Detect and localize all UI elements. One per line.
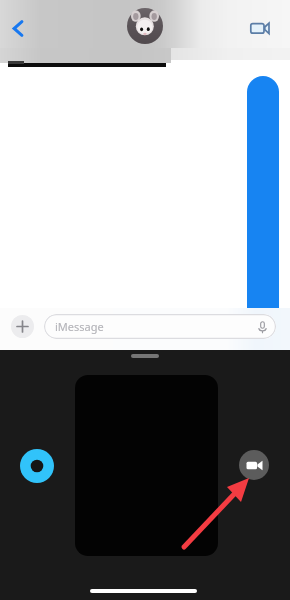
button[interactable]: Back: [4, 15, 30, 41]
button[interactable]: FaceTime: [246, 14, 274, 42]
button[interactable]: iMessage: [44, 314, 276, 339]
button[interactable]: Add attachment: [11, 315, 34, 338]
button[interactable]: Contact profile: [127, 8, 163, 44]
staticText: iMessage: [55, 319, 104, 334]
button[interactable]: Effects: [20, 449, 54, 483]
button[interactable]: Switch to video: [239, 450, 269, 480]
